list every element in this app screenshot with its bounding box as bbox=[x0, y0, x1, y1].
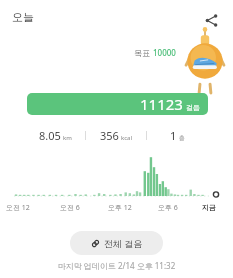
staticText: kcal bbox=[121, 134, 132, 142]
staticText: 11123 bbox=[140, 94, 183, 114]
staticText: 마지막 업데이트 2/14 오후 11:32 bbox=[0, 260, 233, 271]
staticText: 오후 6 bbox=[158, 203, 178, 213]
staticText: 지금 bbox=[202, 203, 216, 212]
staticText: 층 bbox=[179, 134, 185, 142]
button[interactable]: 공유 bbox=[199, 8, 223, 32]
staticText: 오전 6 bbox=[60, 203, 80, 213]
staticText: 8.05 bbox=[39, 128, 61, 143]
button[interactable]: 1 bbox=[147, 128, 207, 143]
staticText: 356 bbox=[100, 128, 119, 143]
button[interactable]: 356 bbox=[86, 128, 146, 143]
staticText: 전체 걸음 bbox=[104, 237, 143, 249]
staticText: 목표 bbox=[134, 48, 150, 58]
button[interactable]: 목표 bbox=[127, 44, 183, 61]
staticText: 1 bbox=[170, 128, 177, 143]
staticText: km bbox=[63, 134, 72, 142]
button[interactable]: 8.05 bbox=[26, 128, 85, 143]
button[interactable]: 11123 bbox=[27, 93, 208, 115]
staticText: 10000 bbox=[153, 47, 176, 58]
button[interactable]: 전체 걸음 bbox=[70, 231, 163, 255]
staticText: 오전 12 bbox=[6, 203, 30, 213]
staticText: 오늘 bbox=[12, 10, 34, 24]
staticText: 걸음 bbox=[186, 103, 200, 112]
staticText: 오후 12 bbox=[108, 203, 132, 213]
